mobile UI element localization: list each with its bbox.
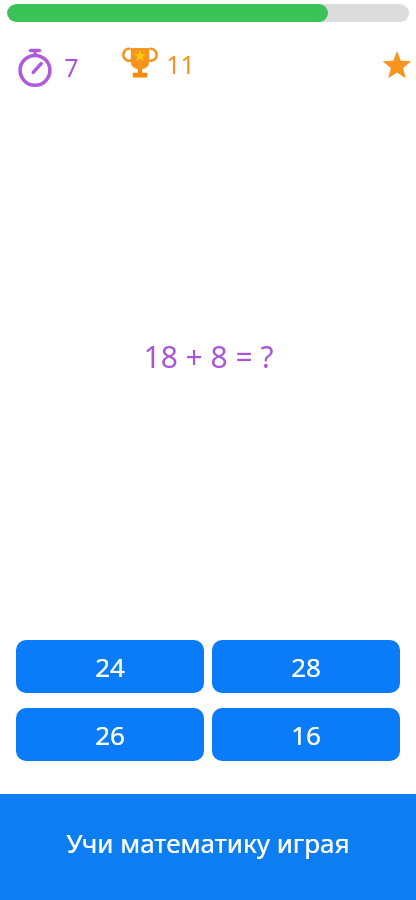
staticText: 24 xyxy=(95,649,125,684)
button[interactable]: 26 xyxy=(16,708,204,761)
staticText: Учи математику играя xyxy=(66,825,350,860)
button[interactable]: Учи математику играя xyxy=(0,794,416,900)
staticText: 16 xyxy=(291,717,321,752)
other: Timer xyxy=(14,46,56,88)
button[interactable]: 24 xyxy=(16,640,204,693)
button[interactable]: Favorite xyxy=(376,45,416,87)
button[interactable]: Timer xyxy=(10,44,83,90)
button[interactable]: 28 xyxy=(212,640,400,693)
staticText: 28 xyxy=(291,649,321,684)
button[interactable]: 16 xyxy=(212,708,400,761)
staticText: 26 xyxy=(95,717,125,752)
other: Trophy xyxy=(120,44,160,84)
staticText: 18 + 8 = ? xyxy=(143,336,274,377)
staticText: 7 xyxy=(64,50,79,84)
staticText: 11 xyxy=(166,47,195,81)
button[interactable]: Trophy xyxy=(116,42,199,86)
